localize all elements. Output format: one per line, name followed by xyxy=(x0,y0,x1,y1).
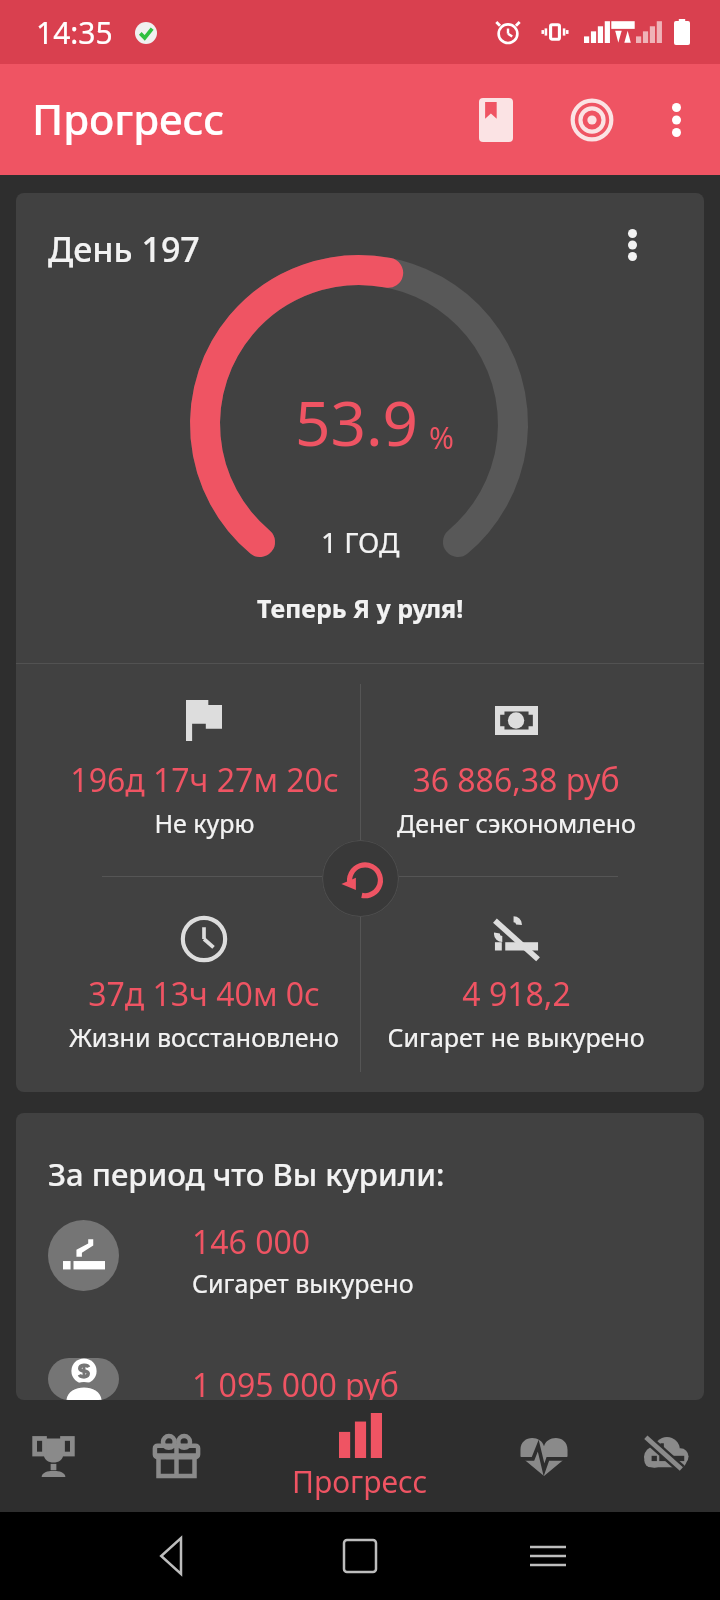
staticText: 1 095 000 руб xyxy=(192,1363,399,1400)
staticText: За период что Вы курили: xyxy=(48,1153,445,1195)
button[interactable]: 1 095 000 руб xyxy=(16,1358,704,1400)
button[interactable]: Reset xyxy=(322,840,399,917)
staticText: Не курю xyxy=(154,806,255,840)
staticText: Сигарет выкурено xyxy=(192,1266,414,1300)
staticText: Денег сэкономлено xyxy=(397,806,636,840)
staticText: 53.9 xyxy=(295,380,419,464)
button[interactable]: Прогресс xyxy=(250,1400,470,1512)
staticText: 4 918,2 xyxy=(462,972,571,1016)
staticText: Прогресс xyxy=(32,90,225,147)
staticText: Прогресс xyxy=(292,1461,428,1502)
staticText: 1 ГОД xyxy=(321,523,400,561)
button[interactable]: Diary xyxy=(448,72,544,168)
button[interactable]: Health xyxy=(472,1400,616,1512)
button[interactable]: More options xyxy=(628,72,720,168)
button[interactable]: 146 000 xyxy=(16,1215,704,1295)
button[interactable]: Card menu xyxy=(588,201,676,289)
staticText: День 197 xyxy=(48,226,200,272)
staticText: Жизни восстановлено xyxy=(69,1020,339,1054)
button[interactable]: Goals xyxy=(544,72,640,168)
button[interactable]: 37д 13ч 40м 0с xyxy=(48,878,360,1092)
staticText: % xyxy=(429,417,454,458)
button[interactable]: 36 886,38 руб xyxy=(360,664,672,878)
button[interactable]: Awards xyxy=(0,1400,125,1512)
staticText: Теперь Я у руля! xyxy=(257,591,464,625)
button[interactable]: 4 918,2 xyxy=(360,878,672,1092)
button[interactable]: Gifts xyxy=(104,1400,248,1512)
button[interactable]: 196д 17ч 27м 20с xyxy=(48,664,360,878)
staticText: Сигарет не выкурено xyxy=(387,1020,645,1054)
staticText: 37д 13ч 40м 0с xyxy=(88,972,320,1016)
staticText: 196д 17ч 27м 20с xyxy=(70,758,339,802)
staticText: 36 886,38 руб xyxy=(412,758,620,802)
staticText: 146 000 xyxy=(192,1220,311,1264)
button[interactable]: Smoke free xyxy=(594,1400,720,1512)
staticText: 14:35 xyxy=(36,12,113,53)
